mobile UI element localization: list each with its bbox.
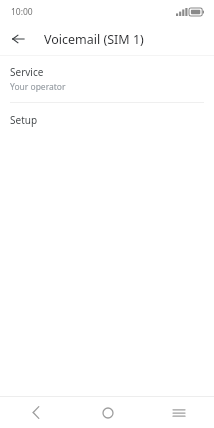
- button[interactable]: Back: [6, 27, 30, 51]
- button[interactable]: Service: [0, 56, 214, 102]
- button[interactable]: Setup: [0, 103, 214, 137]
- staticText: Setup: [10, 113, 38, 127]
- button[interactable]: Home: [72, 397, 143, 428]
- button[interactable]: Back: [0, 397, 72, 428]
- button[interactable]: Recent apps: [143, 397, 214, 428]
- staticText: 10:00: [11, 6, 33, 18]
- staticText: Your operator: [10, 81, 66, 93]
- staticText: Voicemail (SIM 1): [44, 31, 144, 48]
- staticText: Service: [10, 65, 44, 79]
